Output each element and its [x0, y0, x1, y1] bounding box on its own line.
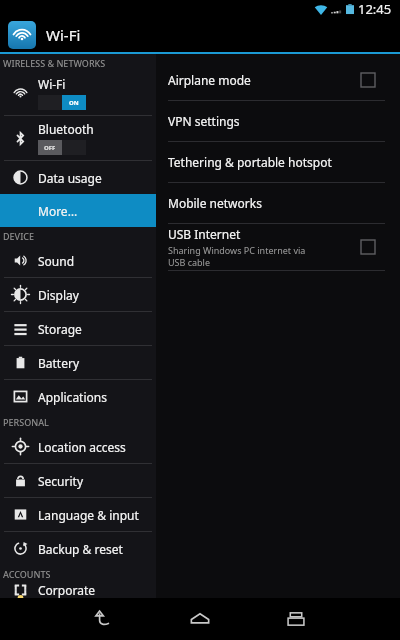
button[interactable]: Storage — [0, 312, 156, 345]
button[interactable]: Recent apps — [248, 598, 344, 640]
staticText: ON — [69, 99, 79, 107]
button[interactable]: Wi-Fi — [0, 71, 156, 115]
staticText: VPN settings — [168, 113, 240, 129]
staticText: Tethering & portable hotspot — [168, 154, 332, 170]
button[interactable]: VPN settings — [156, 101, 400, 141]
button[interactable]: Airplane mode — [156, 60, 400, 100]
staticText: Language & input — [38, 507, 139, 523]
staticText: Location access — [38, 439, 126, 455]
staticText: Backup & reset — [38, 541, 123, 557]
staticText: Storage — [38, 321, 82, 337]
staticText: DEVICE — [3, 230, 35, 242]
staticText: OFF — [44, 144, 56, 152]
button[interactable]: Tethering & portable hotspot — [156, 142, 400, 182]
staticText: Airplane mode — [168, 72, 251, 88]
staticText: ACCOUNTS — [3, 568, 51, 580]
button[interactable]: Bluetooth — [0, 116, 156, 160]
staticText: Mobile networks — [168, 195, 262, 211]
staticText: USB Internet — [168, 226, 241, 242]
staticText: PERSONAL — [3, 416, 49, 428]
staticText: Security — [38, 473, 84, 489]
staticText: 12:45 — [358, 0, 392, 18]
staticText: Data usage — [38, 170, 102, 186]
staticText: WIRELESS & NETWORKS — [3, 57, 106, 69]
staticText: Sharing Windows PC internet via USB cabl… — [168, 244, 306, 268]
button[interactable]: Mobile networks — [156, 183, 400, 223]
button[interactable]: Security — [0, 464, 156, 497]
staticText: Display — [38, 287, 79, 303]
button[interactable]: Sound — [0, 244, 156, 277]
button[interactable]: Language & input — [0, 498, 156, 531]
staticText: Applications — [38, 389, 107, 405]
button[interactable]: Home — [152, 598, 248, 640]
staticText: Battery — [38, 355, 80, 371]
button[interactable]: Location access — [0, 430, 156, 463]
button[interactable]: Applications — [0, 380, 156, 413]
button[interactable]: Backup & reset — [0, 532, 156, 565]
staticText: Sound — [38, 253, 75, 269]
staticText: Bluetooth — [38, 121, 94, 137]
button[interactable]: Back — [56, 598, 152, 640]
staticText: Corporate — [38, 582, 95, 598]
button[interactable]: USB Internet — [156, 224, 400, 270]
button[interactable]: Battery — [0, 346, 156, 379]
button[interactable]: Display — [0, 278, 156, 311]
button[interactable]: More… — [0, 194, 156, 227]
button[interactable]: Data usage — [0, 161, 156, 194]
staticText: More… — [38, 203, 78, 219]
button[interactable]: Corporate — [0, 582, 156, 598]
staticText: Wi-Fi — [38, 76, 66, 92]
staticText: Wi-Fi — [46, 25, 81, 45]
